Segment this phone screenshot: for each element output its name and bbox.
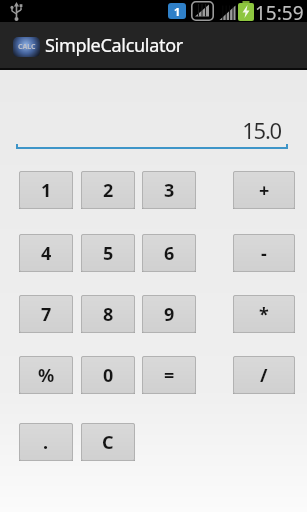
staticText: /: [260, 363, 268, 388]
staticText: *: [259, 302, 269, 327]
button[interactable]: 1: [19, 171, 73, 209]
staticText: 7: [41, 302, 52, 327]
staticText: 2: [103, 178, 114, 203]
button[interactable]: C: [81, 423, 135, 461]
button[interactable]: %: [19, 356, 73, 394]
staticText: 3: [164, 178, 175, 203]
button[interactable]: 8: [81, 295, 135, 333]
staticText: =: [164, 363, 175, 388]
button[interactable]: 4: [19, 234, 73, 272]
staticText: 1: [41, 178, 52, 203]
button[interactable]: =: [142, 356, 196, 394]
staticText: -: [261, 241, 267, 266]
button[interactable]: 7: [19, 295, 73, 333]
button[interactable]: 2: [81, 171, 135, 209]
button[interactable]: 15.0: [16, 115, 288, 149]
button[interactable]: /: [233, 356, 295, 394]
staticText: SimpleCalculator: [45, 33, 183, 58]
staticText: 1: [174, 4, 181, 19]
staticText: 6: [164, 241, 175, 266]
staticText: 0: [103, 363, 114, 388]
button[interactable]: *: [233, 295, 295, 333]
button[interactable]: 5: [81, 234, 135, 272]
staticText: C: [102, 430, 114, 455]
staticText: 5: [103, 241, 114, 266]
button[interactable]: 9: [142, 295, 196, 333]
staticText: 8: [103, 302, 114, 327]
button[interactable]: -: [233, 234, 295, 272]
staticText: %: [38, 363, 55, 388]
button[interactable]: 6: [142, 234, 196, 272]
staticText: CALC: [18, 42, 36, 52]
staticText: +: [259, 178, 270, 203]
staticText: 15.0: [242, 115, 281, 145]
button[interactable]: 3: [142, 171, 196, 209]
staticText: 9: [164, 302, 175, 327]
staticText: .: [43, 430, 49, 455]
staticText: 15:59: [255, 0, 304, 22]
staticText: 4: [41, 241, 52, 266]
button[interactable]: +: [233, 171, 295, 209]
button[interactable]: .: [19, 423, 73, 461]
button[interactable]: 0: [81, 356, 135, 394]
